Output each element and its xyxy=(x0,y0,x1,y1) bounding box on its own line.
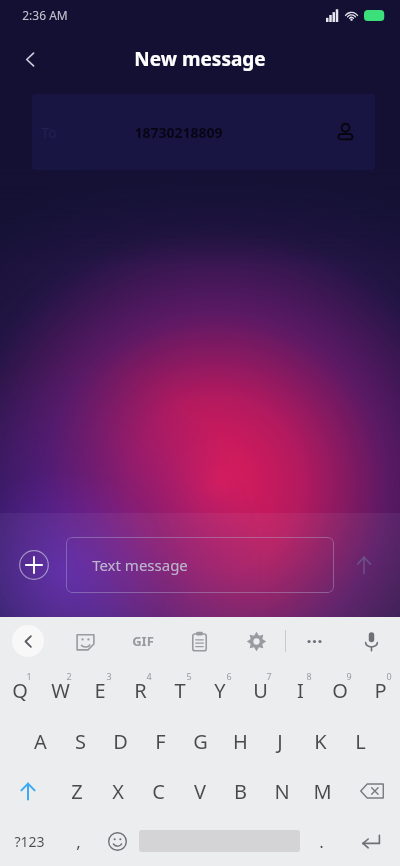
button[interactable]: E xyxy=(80,665,120,716)
button[interactable]: B xyxy=(220,766,261,816)
button[interactable]: X xyxy=(97,766,138,816)
staticText: 18730218809 xyxy=(134,123,223,142)
button[interactable]: A xyxy=(20,716,60,766)
button[interactable]: Voice input xyxy=(343,617,400,665)
staticText: J xyxy=(277,728,283,755)
staticText: New message xyxy=(134,46,266,72)
staticText: To xyxy=(41,123,57,142)
button[interactable]: To xyxy=(32,94,375,170)
staticText: 9 xyxy=(346,670,352,682)
staticText: Q xyxy=(12,677,28,704)
staticText: 2 xyxy=(66,670,72,682)
staticText: C xyxy=(152,778,165,805)
button[interactable]: Settings xyxy=(228,617,285,665)
button[interactable]: H xyxy=(220,716,260,766)
button[interactable]: G xyxy=(180,716,220,766)
staticText: M xyxy=(313,778,332,805)
staticText: F xyxy=(155,728,166,755)
button[interactable]: S xyxy=(60,716,100,766)
button[interactable]: Q xyxy=(0,665,40,716)
staticText: N xyxy=(274,778,290,805)
staticText: Text message xyxy=(92,555,188,575)
button[interactable]: ?123 xyxy=(0,816,59,866)
staticText: G xyxy=(193,728,208,755)
staticText: , xyxy=(76,830,81,853)
button[interactable]: T xyxy=(160,665,200,716)
staticText: V xyxy=(194,778,206,805)
button[interactable]: W xyxy=(40,665,80,716)
button[interactable]: Attach xyxy=(12,543,56,587)
staticText: 3 xyxy=(106,670,112,682)
button[interactable]: Y xyxy=(200,665,240,716)
staticText: Y xyxy=(214,677,226,704)
button[interactable]: , xyxy=(59,816,98,866)
button[interactable]: P xyxy=(360,665,400,716)
button[interactable]: J xyxy=(260,716,300,766)
staticText: X xyxy=(112,778,124,805)
button[interactable]: Emoji xyxy=(98,816,137,866)
staticText: U xyxy=(253,677,268,704)
button[interactable]: Enter xyxy=(341,816,400,866)
button[interactable]: Shift xyxy=(0,766,56,816)
button[interactable]: Send xyxy=(340,541,388,589)
button[interactable]: Close toolbar xyxy=(0,617,56,665)
button[interactable]: Z xyxy=(56,766,97,816)
staticText: K xyxy=(314,728,327,755)
staticText: 2:36 AM xyxy=(22,7,68,23)
staticText: L xyxy=(355,728,366,755)
staticText: ?123 xyxy=(14,832,45,851)
button[interactable]: N xyxy=(261,766,302,816)
staticText: 1 xyxy=(26,670,32,682)
button[interactable]: Back xyxy=(8,37,52,81)
button[interactable]: O xyxy=(320,665,360,716)
button[interactable]: F xyxy=(140,716,180,766)
staticText: Z xyxy=(71,778,83,805)
staticText: 6 xyxy=(226,670,232,682)
button[interactable]: V xyxy=(179,766,220,816)
staticText: H xyxy=(233,728,248,755)
button[interactable]: . xyxy=(302,816,341,866)
button[interactable]: D xyxy=(100,716,140,766)
button[interactable]: Clipboard xyxy=(171,617,228,665)
staticText: I xyxy=(297,677,304,704)
staticText: 5 xyxy=(186,670,192,682)
staticText: A xyxy=(34,728,47,755)
button[interactable]: I xyxy=(280,665,320,716)
button[interactable]: GIF xyxy=(114,617,171,665)
staticText: . xyxy=(319,830,324,853)
button[interactable]: K xyxy=(300,716,340,766)
button[interactable]: Text message xyxy=(66,537,334,593)
button[interactable]: R xyxy=(120,665,160,716)
button[interactable]: Stickers xyxy=(56,617,114,665)
staticText: 8 xyxy=(306,670,312,682)
button[interactable]: Backspace xyxy=(343,766,400,816)
staticText: D xyxy=(113,728,128,755)
staticText: B xyxy=(234,778,247,805)
button[interactable]: C xyxy=(138,766,179,816)
button[interactable]: L xyxy=(340,716,380,766)
button[interactable]: Add contact xyxy=(326,113,364,151)
staticText: O xyxy=(332,677,348,704)
button[interactable]: More xyxy=(286,617,343,665)
staticText: 7 xyxy=(266,670,272,682)
staticText: E xyxy=(94,677,106,704)
staticText: T xyxy=(174,677,186,704)
button[interactable]: M xyxy=(302,766,343,816)
staticText: R xyxy=(134,677,147,704)
staticText: 4 xyxy=(146,670,152,682)
staticText: P xyxy=(374,677,387,704)
staticText: 0 xyxy=(386,670,392,682)
button[interactable]: U xyxy=(240,665,280,716)
staticText: S xyxy=(75,728,86,755)
staticText: GIF xyxy=(132,632,154,650)
staticText: W xyxy=(51,677,70,704)
